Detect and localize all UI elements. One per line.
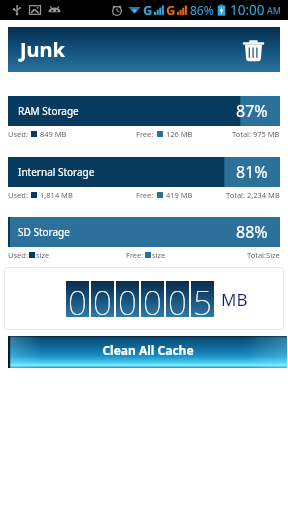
staticText: 0: [118, 280, 137, 316]
staticText: 0: [93, 280, 112, 316]
staticText: size: [152, 250, 166, 260]
button[interactable]: RAM Storage: [8, 96, 280, 126]
staticText: 419 MB: [166, 190, 193, 200]
staticText: 849 MB: [40, 129, 67, 139]
staticText: 81%: [236, 161, 268, 183]
staticText: MB: [221, 288, 248, 311]
staticText: Clean All Cache: [102, 342, 194, 358]
staticText: 5: [193, 280, 212, 316]
button[interactable]: Clean All Cache: [8, 336, 287, 368]
button[interactable]: Delete junk: [242, 36, 265, 64]
staticText: Used:: [8, 129, 28, 139]
staticText: Junk: [20, 36, 66, 63]
staticText: 88%: [236, 221, 268, 243]
staticText: 87%: [236, 100, 268, 122]
staticText: G: [166, 1, 176, 19]
staticText: AM: [267, 4, 281, 16]
staticText: Free:: [136, 190, 154, 200]
staticText: Total: 975 MB: [232, 129, 280, 139]
staticText: 10:00: [230, 1, 265, 19]
staticText: 0: [168, 280, 187, 316]
staticText: Total: 2,234 MB: [226, 190, 280, 200]
staticText: RAM Storage: [18, 104, 79, 118]
staticText: 86%: [190, 2, 214, 18]
staticText: 1,814 MB: [40, 190, 73, 200]
button[interactable]: SD Storage: [8, 217, 280, 247]
staticText: Free:: [136, 129, 154, 139]
staticText: 0: [68, 280, 87, 316]
staticText: Used:: [8, 250, 28, 260]
staticText: Free:: [126, 250, 144, 260]
staticText: SD Storage: [18, 225, 70, 239]
staticText: Total:Size: [247, 250, 280, 260]
button[interactable]: Internal Storage: [8, 157, 280, 187]
staticText: G: [143, 1, 153, 19]
button[interactable]: Junk: [8, 27, 280, 72]
staticText: Used:: [8, 190, 28, 200]
staticText: size: [36, 250, 50, 260]
staticText: 126 MB: [166, 129, 193, 139]
staticText: Internal Storage: [18, 165, 95, 179]
staticText: 0: [143, 280, 162, 316]
